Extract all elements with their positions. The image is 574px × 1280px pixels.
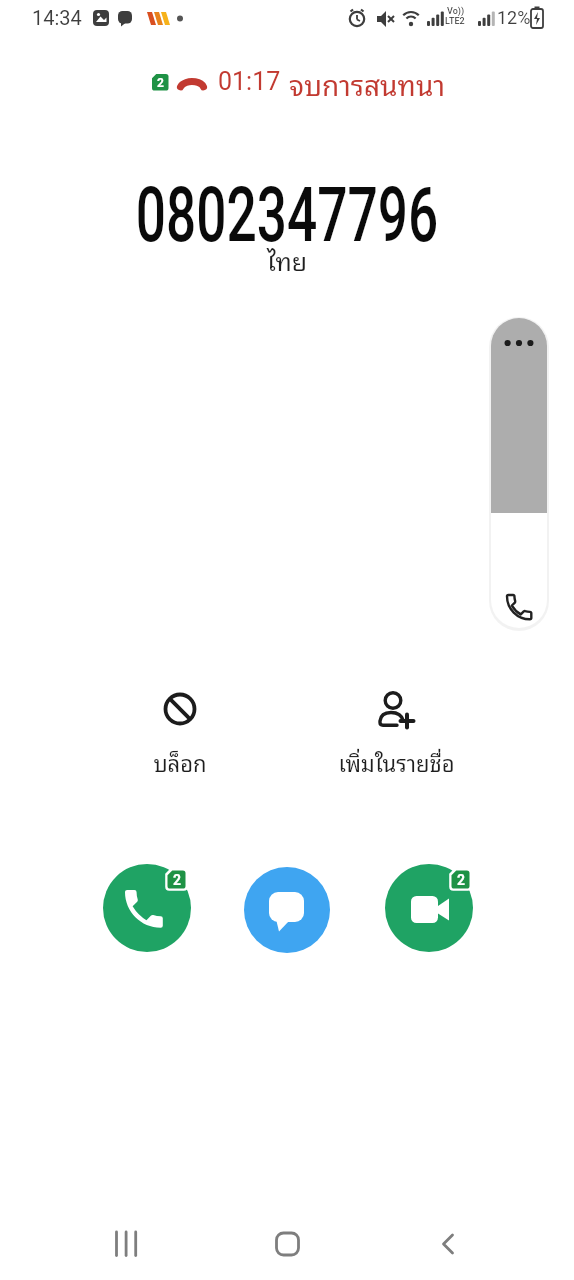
staticText: 12% xyxy=(497,7,531,28)
staticText: 2 xyxy=(157,76,164,90)
staticText: จบการสนทนา xyxy=(289,61,446,106)
staticText: 2 xyxy=(457,872,466,888)
staticText: 2 xyxy=(173,872,182,888)
staticText: LTE2 xyxy=(445,16,465,27)
staticText: 14:34 xyxy=(32,6,82,29)
staticText: ไทย xyxy=(267,240,308,280)
staticText: 01:17 xyxy=(218,67,281,96)
staticText: Vo)) xyxy=(447,6,465,17)
staticText: เพิ่มในรายชื่อ xyxy=(338,744,455,779)
staticText: 0802347796 xyxy=(136,170,438,259)
staticText: บล็อก xyxy=(153,744,207,779)
